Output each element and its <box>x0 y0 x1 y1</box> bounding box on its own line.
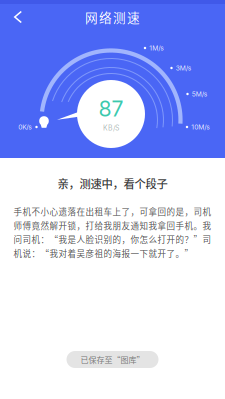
staticText: 亲，测速中，看个段子 <box>57 175 167 191</box>
staticText: KB/S <box>103 124 119 132</box>
staticText: 手机不小心遗落在出租车上了，可拿回的是，司机师傅竟然解开锁，打给我朋友通知我拿回… <box>13 205 211 259</box>
button[interactable]: Back <box>2 4 34 30</box>
staticText: 网络测速 <box>85 8 140 26</box>
staticText: 0K/s <box>18 123 32 131</box>
staticText: 87 <box>98 96 123 122</box>
staticText: 3M/s <box>176 64 192 72</box>
staticText: 1M/s <box>149 44 164 52</box>
staticText: 已保存至“图库” <box>80 354 144 365</box>
staticText: 10M/s <box>191 123 210 131</box>
button[interactable]: 已保存至“图库” <box>66 351 158 368</box>
staticText: 5M/s <box>192 90 208 98</box>
